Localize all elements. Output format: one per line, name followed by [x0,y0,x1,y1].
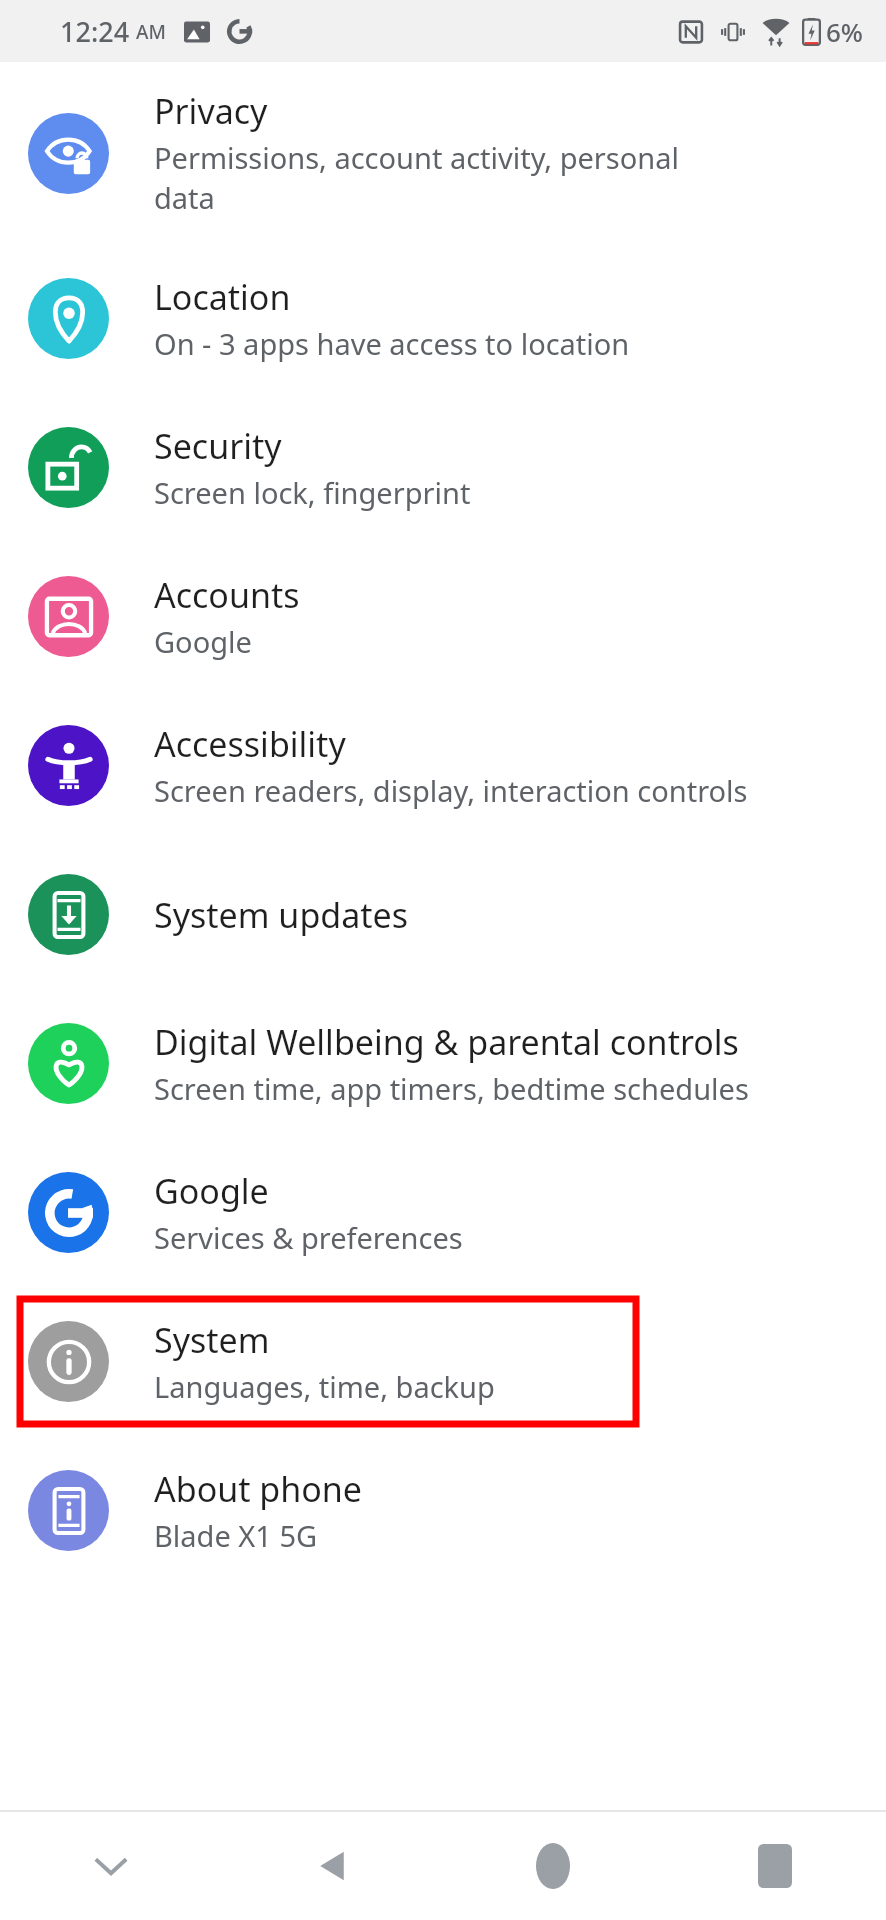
staticText: 6% [826,14,864,49]
button[interactable]: Back [221,1812,442,1920]
staticText: About phone [154,1466,363,1512]
staticText: Screen time, app timers, bedtime schedul… [154,1069,749,1108]
staticText: Location [154,274,291,320]
staticText: Permissions, account activity, personal … [154,138,679,218]
button[interactable]: About phone [0,1436,886,1585]
staticText: Security [154,423,282,469]
staticText: Google [154,1168,269,1214]
button[interactable]: Accounts [0,542,886,691]
button[interactable]: Home [442,1812,664,1920]
staticText: Screen lock, fingerprint [154,473,471,512]
staticText: Digital Wellbeing & parental controls [154,1019,739,1065]
button[interactable]: Accessibility [0,691,886,840]
staticText: Services & preferences [154,1218,463,1257]
staticText: System [154,1317,270,1363]
button[interactable]: Hide keyboard [0,1812,221,1920]
button[interactable]: Google [0,1138,886,1287]
staticText: AM [136,19,166,45]
button[interactable]: Digital Wellbeing & parental controls [0,989,886,1138]
staticText: Accounts [154,572,300,618]
staticText: 12:24 [60,13,130,50]
staticText: Languages, time, backup [154,1367,495,1406]
staticText: System updates [154,892,409,938]
button[interactable]: System updates [0,840,886,989]
staticText: Screen readers, display, interaction con… [154,771,748,810]
button[interactable]: Privacy [0,62,886,244]
staticText: Google [154,622,252,661]
button[interactable]: Location [0,244,886,393]
button[interactable]: Recent apps [664,1812,886,1920]
button[interactable]: Security [0,393,886,542]
staticText: Accessibility [154,721,346,767]
button[interactable]: System [0,1287,886,1436]
staticText: Privacy [154,88,268,134]
staticText: On - 3 apps have access to location [154,324,630,363]
staticText: Blade X1 5G [154,1516,318,1555]
